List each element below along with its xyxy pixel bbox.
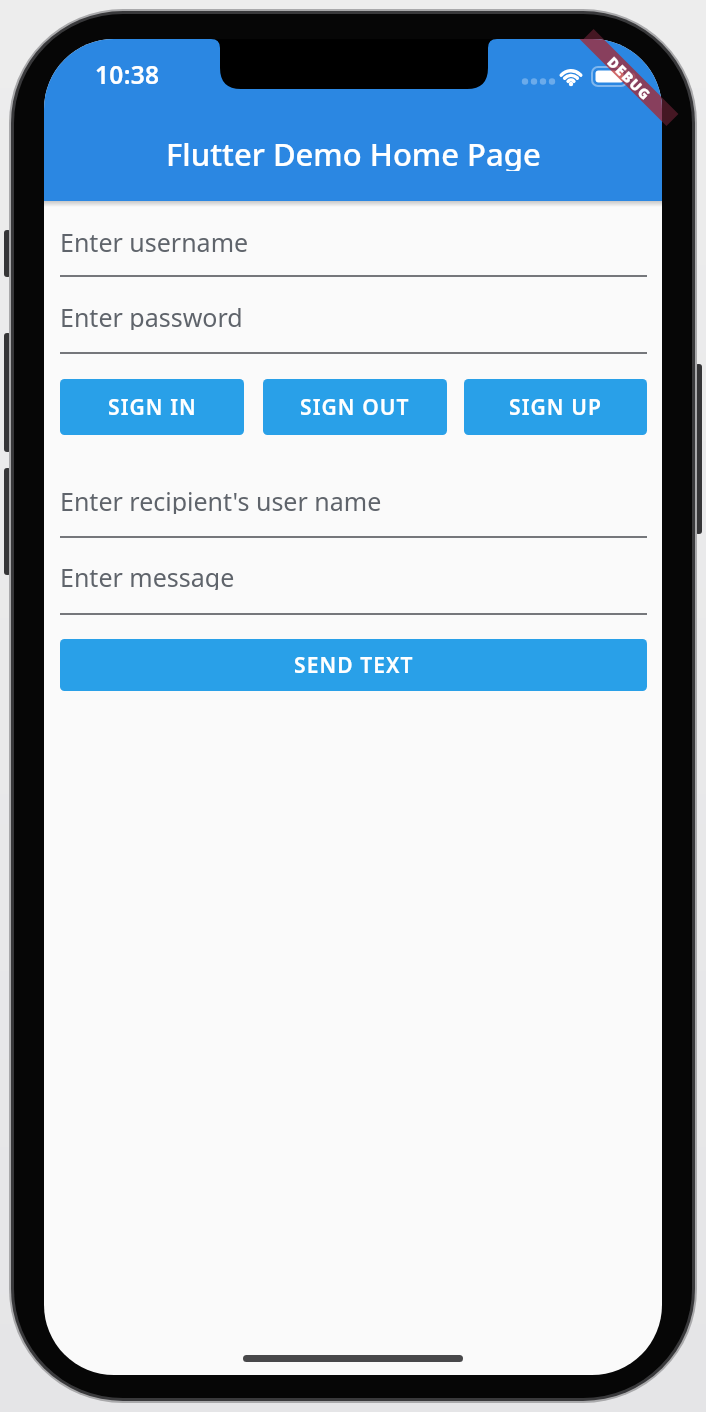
staticText: SIGN OUT [300,393,410,422]
staticText: SEND TEXT [294,651,414,680]
staticText: SIGN UP [509,393,602,422]
button[interactable]: Enter recipient's user name [60,484,647,514]
button[interactable]: Enter password [60,300,647,330]
staticText: DEBUG [605,52,656,103]
staticText: 10:38 [95,58,160,88]
button[interactable]: SIGN UP [464,379,647,435]
staticText: Enter recipient's user name [60,484,382,514]
button[interactable]: SIGN IN [60,379,244,435]
button[interactable]: Enter username [60,225,647,255]
button[interactable]: SIGN OUT [263,379,447,435]
button[interactable]: SEND TEXT [60,639,647,691]
staticText: SIGN IN [108,393,197,422]
staticText: Enter message [60,560,235,590]
button[interactable]: Enter message [60,560,647,590]
staticText: Enter username [60,225,249,255]
staticText: Enter password [60,300,243,330]
staticText: Flutter Demo Home Page [166,133,541,171]
